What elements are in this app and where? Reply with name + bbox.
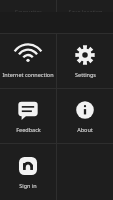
staticText: Save location xyxy=(68,8,103,12)
button[interactable]: About xyxy=(57,89,113,143)
staticText: About xyxy=(77,126,93,133)
button[interactable]: Settings xyxy=(57,34,113,88)
staticText: Favourites xyxy=(15,8,42,12)
staticText: Sign in xyxy=(19,182,37,189)
button[interactable]: Sign in xyxy=(0,144,56,200)
staticText: Feedback xyxy=(16,126,41,133)
button[interactable]: Internet connection xyxy=(0,34,56,88)
staticText: Settings xyxy=(75,71,96,78)
staticText: Internet connection xyxy=(2,71,54,78)
button[interactable]: Feedback xyxy=(0,89,56,143)
button[interactable]: Save location xyxy=(57,0,113,12)
